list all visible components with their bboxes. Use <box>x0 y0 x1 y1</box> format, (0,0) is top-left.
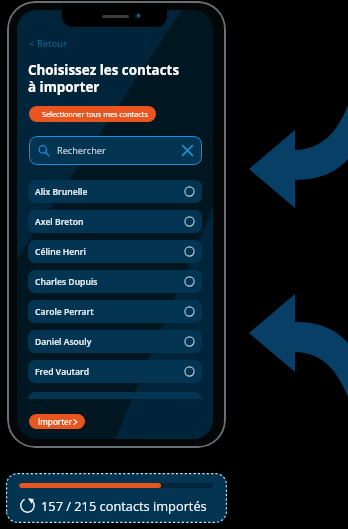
button[interactable]: 157 / 215 contacts importés <box>6 473 227 523</box>
button[interactable]: < Retour <box>28 37 68 50</box>
staticText: Rechercher <box>57 144 106 157</box>
staticText: Importer <box>38 416 73 427</box>
button[interactable]: Rechercher <box>29 136 202 165</box>
staticText: Axel Breton <box>35 216 84 228</box>
other: Effacer <box>181 144 194 157</box>
staticText: Carole Perrart <box>35 306 94 318</box>
staticText: Alix Brunelle <box>35 186 88 198</box>
staticText: < Retour <box>29 37 67 50</box>
button[interactable]: Charles Dupuis <box>28 270 202 293</box>
button[interactable]: Carole Perrart <box>28 300 202 323</box>
staticText: Selectionner tous mes contacts <box>42 109 148 119</box>
button[interactable]: Daniel Asouly <box>28 330 202 353</box>
button[interactable]: Importer <box>29 414 85 429</box>
staticText: 157 / 215 contacts importés <box>41 497 207 514</box>
button[interactable]: Fred Vautard <box>28 360 202 383</box>
button[interactable]: Céline Henri <box>28 240 202 263</box>
button[interactable]: Axel Breton <box>28 210 202 233</box>
button[interactable]: Selectionner tous mes contacts <box>29 106 156 122</box>
staticText: Daniel Asouly <box>35 336 92 348</box>
staticText: Céline Henri <box>35 246 86 258</box>
staticText: Choisissez les contacts à importer <box>28 61 180 96</box>
staticText: Fred Vautard <box>35 366 90 378</box>
button[interactable]: Alix Brunelle <box>28 180 202 203</box>
staticText: Charles Dupuis <box>35 276 98 288</box>
